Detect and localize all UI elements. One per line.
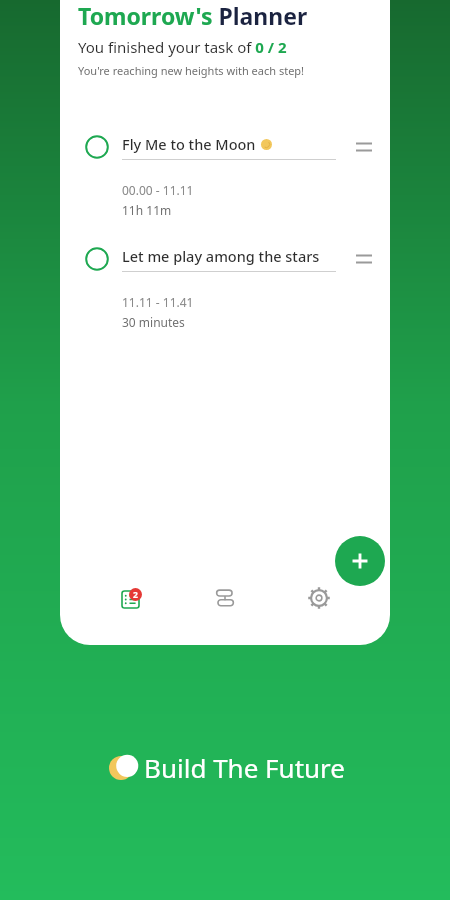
staticText: 30 minutes: [122, 314, 185, 330]
staticText: You're reaching new heights with each st…: [78, 63, 305, 78]
staticText: Tomorrow's Planner: [78, 0, 308, 31]
button[interactable]: Reorder task: [352, 135, 376, 159]
button[interactable]: Tasks: [110, 576, 154, 620]
button[interactable]: Settings: [297, 576, 341, 620]
staticText: 00.00 - 11.11: [122, 182, 194, 198]
button[interactable]: Schedule: [203, 576, 247, 620]
staticText: Let me play among the stars: [122, 246, 320, 266]
button[interactable]: Mark task complete: [84, 246, 110, 272]
staticText: Build The Future: [144, 750, 345, 785]
button[interactable]: Mark task complete: [60, 246, 390, 330]
staticText: 11.11 - 11.41: [122, 294, 194, 310]
staticText: 11h 11m: [122, 202, 172, 218]
staticText: 2: [133, 589, 138, 601]
button[interactable]: Add task: [335, 536, 385, 586]
button[interactable]: Mark task complete: [84, 134, 110, 160]
button[interactable]: Reorder task: [352, 247, 376, 271]
staticText: You finished your task of 0 / 2: [78, 37, 287, 57]
button[interactable]: Mark task complete: [60, 134, 390, 218]
staticText: Fly Me to the Moon: [122, 134, 256, 154]
